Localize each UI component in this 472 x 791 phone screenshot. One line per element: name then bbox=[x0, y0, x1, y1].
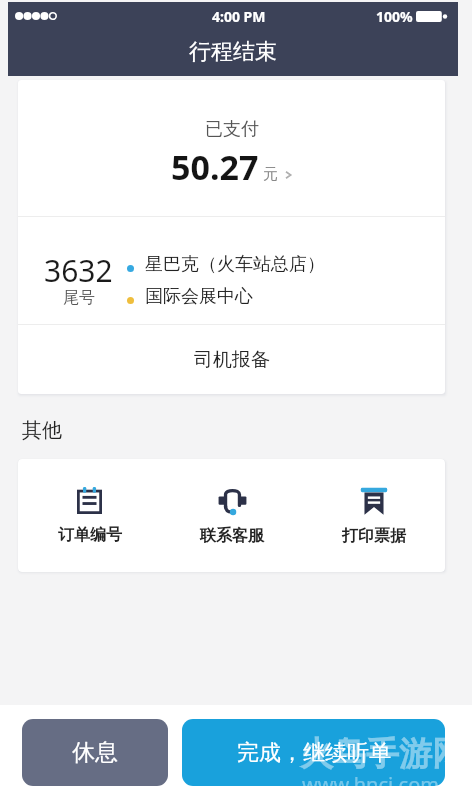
staticText: 100% bbox=[376, 7, 413, 26]
staticText: 元 bbox=[263, 165, 278, 184]
button[interactable]: 已支付 bbox=[18, 80, 445, 216]
button[interactable]: 完成，继续听单 bbox=[182, 719, 445, 786]
staticText: 星巴克（火车站总店） bbox=[145, 253, 325, 276]
staticText: 联系客服 bbox=[200, 526, 264, 546]
other: 打印票据 bbox=[360, 486, 388, 515]
button[interactable]: 订单编号 bbox=[18, 459, 161, 572]
staticText: 尾号 bbox=[63, 288, 95, 308]
other: 订单编号 bbox=[77, 487, 102, 514]
staticText: 火鸟手游网 bbox=[300, 733, 465, 775]
staticText: 休息 bbox=[72, 738, 118, 767]
staticText: 4:00 PM bbox=[212, 7, 266, 26]
button[interactable]: 司机报备 bbox=[18, 325, 445, 394]
staticText: 50.27 bbox=[171, 144, 259, 190]
button[interactable]: 休息 bbox=[22, 719, 168, 786]
button[interactable]: 联系客服 bbox=[161, 459, 303, 572]
staticText: 其他 bbox=[22, 418, 62, 443]
staticText: 已支付 bbox=[205, 118, 259, 141]
staticText: www.hncj.com bbox=[302, 771, 439, 791]
staticText: 打印票据 bbox=[342, 526, 406, 546]
staticText: 完成，继续听单 bbox=[237, 739, 391, 767]
staticText: 国际会展中心 bbox=[145, 285, 253, 308]
staticText: 订单编号 bbox=[58, 525, 122, 545]
button[interactable]: 打印票据 bbox=[303, 459, 445, 572]
other: 联系客服 bbox=[218, 485, 247, 515]
staticText: 行程结束 bbox=[189, 38, 277, 66]
staticText: 司机报备 bbox=[194, 348, 270, 372]
staticText: 3632 bbox=[44, 250, 113, 291]
